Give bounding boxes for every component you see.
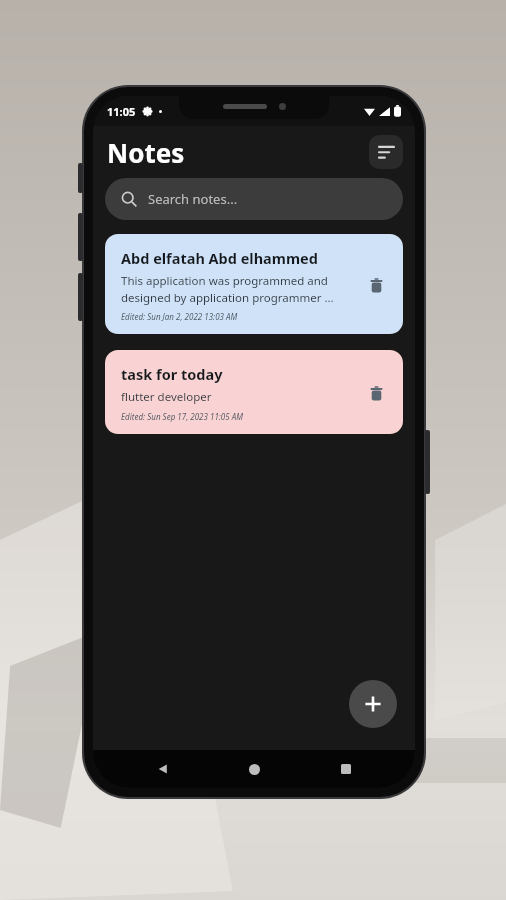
staticText: 11:05 bbox=[107, 104, 136, 119]
staticText: flutter developer bbox=[121, 389, 212, 405]
button[interactable]: Abd elfatah Abd elhammed bbox=[105, 234, 403, 334]
button[interactable]: Add note bbox=[349, 680, 397, 728]
staticText: This application was programmed and desi… bbox=[121, 273, 351, 305]
button[interactable]: Delete note bbox=[359, 268, 393, 302]
staticText: Abd elfatah Abd elhammed bbox=[121, 248, 318, 268]
staticText: Edited: Sun Sep 17, 2023 11:05 AM bbox=[121, 411, 243, 422]
staticText: task for today bbox=[121, 364, 223, 384]
button[interactable]: Home bbox=[232, 750, 276, 788]
button[interactable]: Sort notes bbox=[369, 135, 403, 169]
staticText: Edited: Sun Jan 2, 2022 13:03 AM bbox=[121, 311, 238, 322]
button[interactable]: Recent apps bbox=[324, 750, 368, 788]
button[interactable]: Back bbox=[141, 750, 185, 788]
button[interactable]: task for today bbox=[105, 350, 403, 434]
button[interactable]: Delete note bbox=[359, 376, 393, 410]
staticText: Search notes... bbox=[148, 190, 238, 208]
staticText: Notes bbox=[107, 135, 185, 170]
button[interactable]: Search notes... bbox=[105, 178, 403, 220]
